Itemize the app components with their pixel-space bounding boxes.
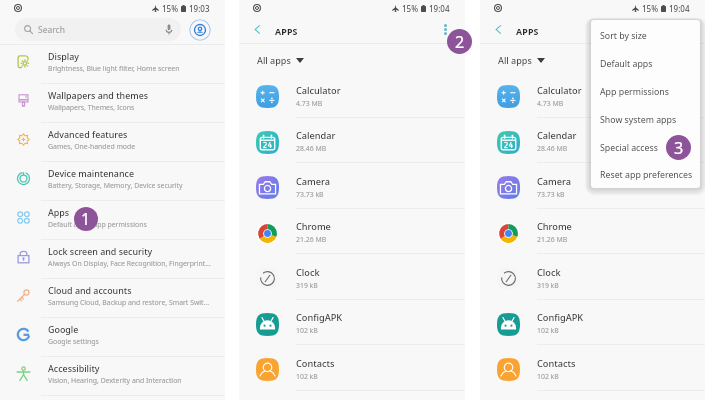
button[interactable]: Device maintenance [0,162,225,200]
staticText: 28.46 MB [537,144,568,153]
staticText: Games, One-handed mode [48,142,136,151]
button[interactable]: Chrome [480,209,705,253]
staticText: Lock screen and security [48,245,153,257]
button[interactable]: Special access [591,134,700,162]
staticText: Wallpapers and themes [48,89,149,101]
staticText: Wallpapers, Themes, Icons [48,103,135,112]
staticText: 15% [402,3,418,14]
button[interactable]: Contacts [480,345,705,390]
staticText: Calendar [537,129,577,142]
staticText: 1 [81,208,91,230]
staticText: 19:04 [669,3,690,14]
staticText: Contacts [296,357,335,370]
staticText: Battery, Storage, Memory, Device securit… [48,181,183,190]
staticText: Calculator [537,84,582,97]
button[interactable]: Accessibility [0,357,225,395]
staticText: All apps [257,54,291,66]
staticText: Special access [600,142,658,154]
button[interactable]: Cloud and accounts [0,279,225,317]
staticText: Google [48,323,79,335]
staticText: 28.46 MB [296,144,327,153]
button[interactable]: Apps [0,201,225,239]
button[interactable]: Clock [480,254,705,299]
button[interactable]: Default apps [591,50,700,78]
staticText: 3 [674,137,684,159]
button[interactable]: Display [0,45,225,83]
staticText: Advanced features [48,128,128,140]
button[interactable]: ConfigAPK [480,300,705,344]
button[interactable]: Reset app preferences [591,162,700,188]
staticText: Calendar [296,129,336,142]
button[interactable]: All apps [498,44,545,72]
staticText: 19:04 [429,3,450,14]
staticText: 19:03 [189,3,210,14]
button[interactable]: Contacts [239,345,465,390]
button[interactable]: Camera [480,163,705,208]
staticText: Camera [537,175,572,188]
staticText: Search [38,24,65,36]
staticText: Clock [296,266,320,279]
staticText: 73.73 kB [537,190,565,199]
button[interactable]: More options [432,16,459,43]
button[interactable]: Show system apps [591,106,700,134]
button[interactable]: Calculator [239,72,465,117]
staticText: Contacts [537,357,576,370]
button[interactable]: All apps [257,44,304,72]
staticText: 4.73 MB [296,99,323,108]
staticText: Camera [296,175,331,188]
staticText: Vision, Hearing, Dexterity and Interacti… [48,376,182,385]
staticText: Chrome [296,220,331,233]
staticText: APPS [516,26,539,38]
staticText: Calculator [296,84,341,97]
staticText: Cloud and accounts [48,284,132,296]
staticText: All apps [498,54,532,66]
button[interactable]: Advanced features [0,123,225,161]
staticText: 102 kB [537,372,559,381]
button[interactable]: Search [15,18,181,41]
staticText: 102 kB [296,372,318,381]
staticText: Always On Display, Face Recognition, Fin… [48,259,211,268]
staticText: 2 [455,31,465,53]
staticText: Display [48,50,79,62]
staticText: 21.26 MB [537,235,568,244]
button[interactable]: Camera [239,163,465,208]
button[interactable]: Chrome [239,209,465,253]
button[interactable]: Account [189,19,211,41]
button[interactable]: Clock [239,254,465,299]
button[interactable]: Calculator [480,72,705,117]
staticText: Apps [48,206,70,218]
staticText: Clock [537,266,561,279]
button[interactable]: Google [0,318,225,356]
button[interactable]: Wallpapers and themes [0,84,225,122]
button[interactable]: Calendar [239,118,465,162]
staticText: Chrome [537,220,572,233]
staticText: App permissions [600,86,669,98]
staticText: Sort by size [600,30,647,42]
staticText: Device maintenance [48,167,134,179]
staticText: Samsung Cloud, Backup and restore, Smart… [48,298,210,307]
staticText: ConfigAPK [296,311,343,324]
button[interactable]: App permissions [591,78,700,106]
staticText: Google settings [48,337,99,346]
staticText: APPS [275,26,298,38]
staticText: Show system apps [600,114,677,126]
button[interactable]: Back [244,16,271,43]
staticText: Accessibility [48,362,100,374]
button[interactable]: Lock screen and security [0,240,225,278]
staticText: 21.26 MB [296,235,327,244]
staticText: 319 kB [537,281,559,290]
staticText: 102 kB [537,326,559,335]
button[interactable]: Sort by size [591,22,700,50]
button[interactable]: ConfigAPK [239,300,465,344]
staticText: 15% [162,3,178,14]
staticText: 15% [642,3,658,14]
staticText: Default apps, App permissions [48,220,147,229]
button[interactable]: Back [485,16,512,43]
staticText: 73.73 kB [296,190,324,199]
staticText: Reset app preferences [600,169,693,181]
staticText: Default apps [600,58,653,70]
staticText: 102 kB [296,326,318,335]
button[interactable]: More options [672,16,699,43]
staticText: 4.73 MB [537,99,564,108]
button[interactable]: Calendar [480,118,705,162]
